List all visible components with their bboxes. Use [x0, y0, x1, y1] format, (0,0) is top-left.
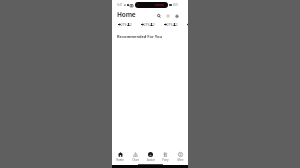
staticText: 86%: [173, 3, 179, 7]
staticText: 21%: [121, 23, 127, 26]
staticText: 212: [176, 23, 179, 26]
staticText: 212: [130, 23, 133, 26]
button[interactable]: Notifications: [172, 11, 181, 20]
staticText: Recommended For You: [117, 34, 163, 39]
button[interactable]: Home: [112, 152, 128, 163]
staticText: 21%: [167, 23, 173, 26]
button[interactable]: Search: [154, 11, 163, 20]
staticText: 212: [153, 23, 156, 26]
staticText: Avatar: [147, 158, 155, 162]
button[interactable]: Party: [158, 152, 173, 163]
staticText: Mine: [177, 158, 184, 162]
button[interactable]: Chart: [128, 152, 143, 163]
button[interactable]: Rewards: [163, 11, 172, 20]
staticText: Party: [162, 158, 169, 162]
staticText: Home: [117, 10, 136, 19]
staticText: 9:41: [117, 3, 123, 7]
button[interactable]: Mine: [173, 152, 188, 163]
staticText: 21%: [144, 23, 150, 26]
staticText: Chart: [132, 158, 139, 162]
staticText: Home: [116, 158, 124, 162]
button[interactable]: Avatar: [143, 152, 158, 163]
